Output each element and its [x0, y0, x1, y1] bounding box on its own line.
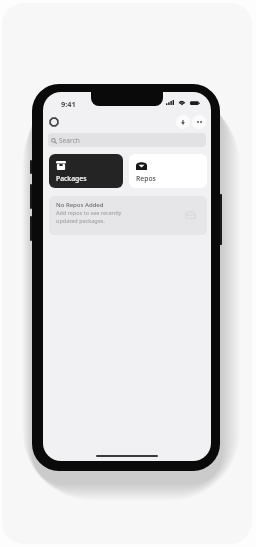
staticText: Packages: [56, 174, 87, 183]
button[interactable]: Packagist home: [45, 113, 63, 131]
staticText: Repos: [136, 174, 156, 183]
staticText: Search: [59, 136, 80, 145]
button[interactable]: Downloads: [176, 115, 190, 129]
staticText: No Repos Added: [56, 201, 104, 209]
staticText: Add repos to see recently updated packag…: [56, 209, 122, 225]
button[interactable]: Packages: [49, 154, 123, 188]
staticText: 9:41: [61, 99, 76, 109]
button[interactable]: Repos: [129, 154, 207, 188]
button[interactable]: Search: [48, 133, 206, 147]
button[interactable]: More options: [192, 115, 206, 129]
